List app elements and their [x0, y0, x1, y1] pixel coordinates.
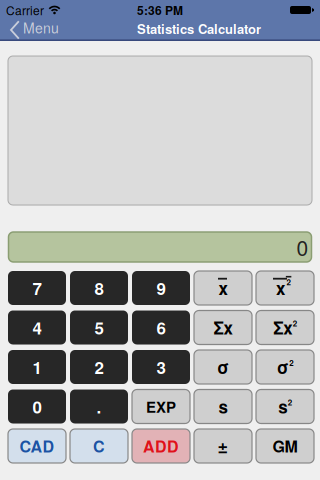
staticText: s	[278, 395, 287, 418]
staticText: Σx	[273, 316, 292, 339]
staticText: 3	[156, 355, 165, 379]
staticText: .	[96, 395, 101, 418]
button[interactable]: 1	[8, 350, 66, 384]
button[interactable]: s	[256, 389, 314, 423]
button[interactable]: 5	[70, 310, 128, 344]
staticText: σ	[277, 355, 289, 379]
button[interactable]: ±	[194, 429, 252, 463]
staticText: 1	[32, 355, 41, 379]
button[interactable]: 0	[8, 389, 66, 423]
staticText: Carrier	[6, 2, 44, 18]
staticText: Menu	[23, 18, 59, 37]
staticText: 7	[32, 276, 41, 300]
button[interactable]: CAD	[8, 429, 66, 463]
staticText: 4	[32, 316, 41, 339]
button[interactable]: 3	[132, 350, 190, 384]
staticText: σ	[217, 355, 229, 379]
button[interactable]: 4	[8, 310, 66, 344]
staticText: x	[218, 276, 227, 300]
button[interactable]: Menu	[0, 20, 59, 40]
button[interactable]: 9	[132, 271, 190, 305]
staticText: ADD	[143, 435, 179, 457]
button[interactable]: 6	[132, 310, 190, 344]
staticText: x	[276, 276, 285, 300]
staticText: 5	[94, 316, 103, 339]
button[interactable]: σ	[256, 350, 314, 384]
button[interactable]: s	[194, 389, 252, 423]
staticText: GM	[272, 435, 297, 457]
staticText: 9	[156, 276, 165, 300]
staticText: Σx	[213, 316, 232, 339]
button[interactable]: x	[194, 271, 252, 305]
staticText: 5:36 PM	[137, 2, 183, 18]
staticText: 8	[94, 276, 103, 300]
button[interactable]: x	[256, 271, 314, 305]
staticText: C	[93, 435, 105, 457]
button[interactable]: 7	[8, 271, 66, 305]
staticText: 6	[156, 316, 165, 339]
staticText: 2	[94, 355, 103, 379]
staticText: 2	[289, 357, 293, 368]
staticText: s	[218, 395, 227, 418]
staticText: 2	[288, 397, 292, 408]
button[interactable]: EXP	[132, 389, 190, 423]
button[interactable]: Σx	[256, 310, 314, 344]
button[interactable]: .	[70, 389, 128, 423]
staticText: EXP	[146, 396, 176, 417]
staticText: Statistics Calculator	[137, 20, 261, 38]
button[interactable]: σ	[194, 350, 252, 384]
button[interactable]: Σx	[194, 310, 252, 344]
staticText: 0	[32, 395, 41, 418]
staticText: ±	[217, 433, 228, 458]
button[interactable]: C	[70, 429, 128, 463]
staticText: 2	[293, 318, 297, 329]
button[interactable]: 8	[70, 271, 128, 305]
button[interactable]: GM	[256, 429, 314, 463]
staticText: 0	[296, 232, 308, 262]
button[interactable]: ADD	[132, 429, 190, 463]
staticText: CAD	[19, 435, 54, 457]
button[interactable]: 2	[70, 350, 128, 384]
staticText: 2	[286, 276, 290, 288]
